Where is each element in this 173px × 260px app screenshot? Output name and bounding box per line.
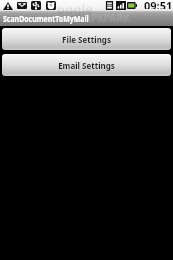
button[interactable]: File Settings: [2, 28, 171, 50]
staticText: File Settings: [62, 34, 111, 45]
staticText: 09:51: [144, 0, 173, 9]
button[interactable]: Email Settings: [2, 54, 171, 76]
staticText: Email Settings: [58, 60, 115, 71]
staticText: ScanDocumentToMyMail: [3, 13, 89, 25]
staticText: APKPARK: [84, 11, 130, 25]
staticText: oogle: [57, 0, 94, 18]
